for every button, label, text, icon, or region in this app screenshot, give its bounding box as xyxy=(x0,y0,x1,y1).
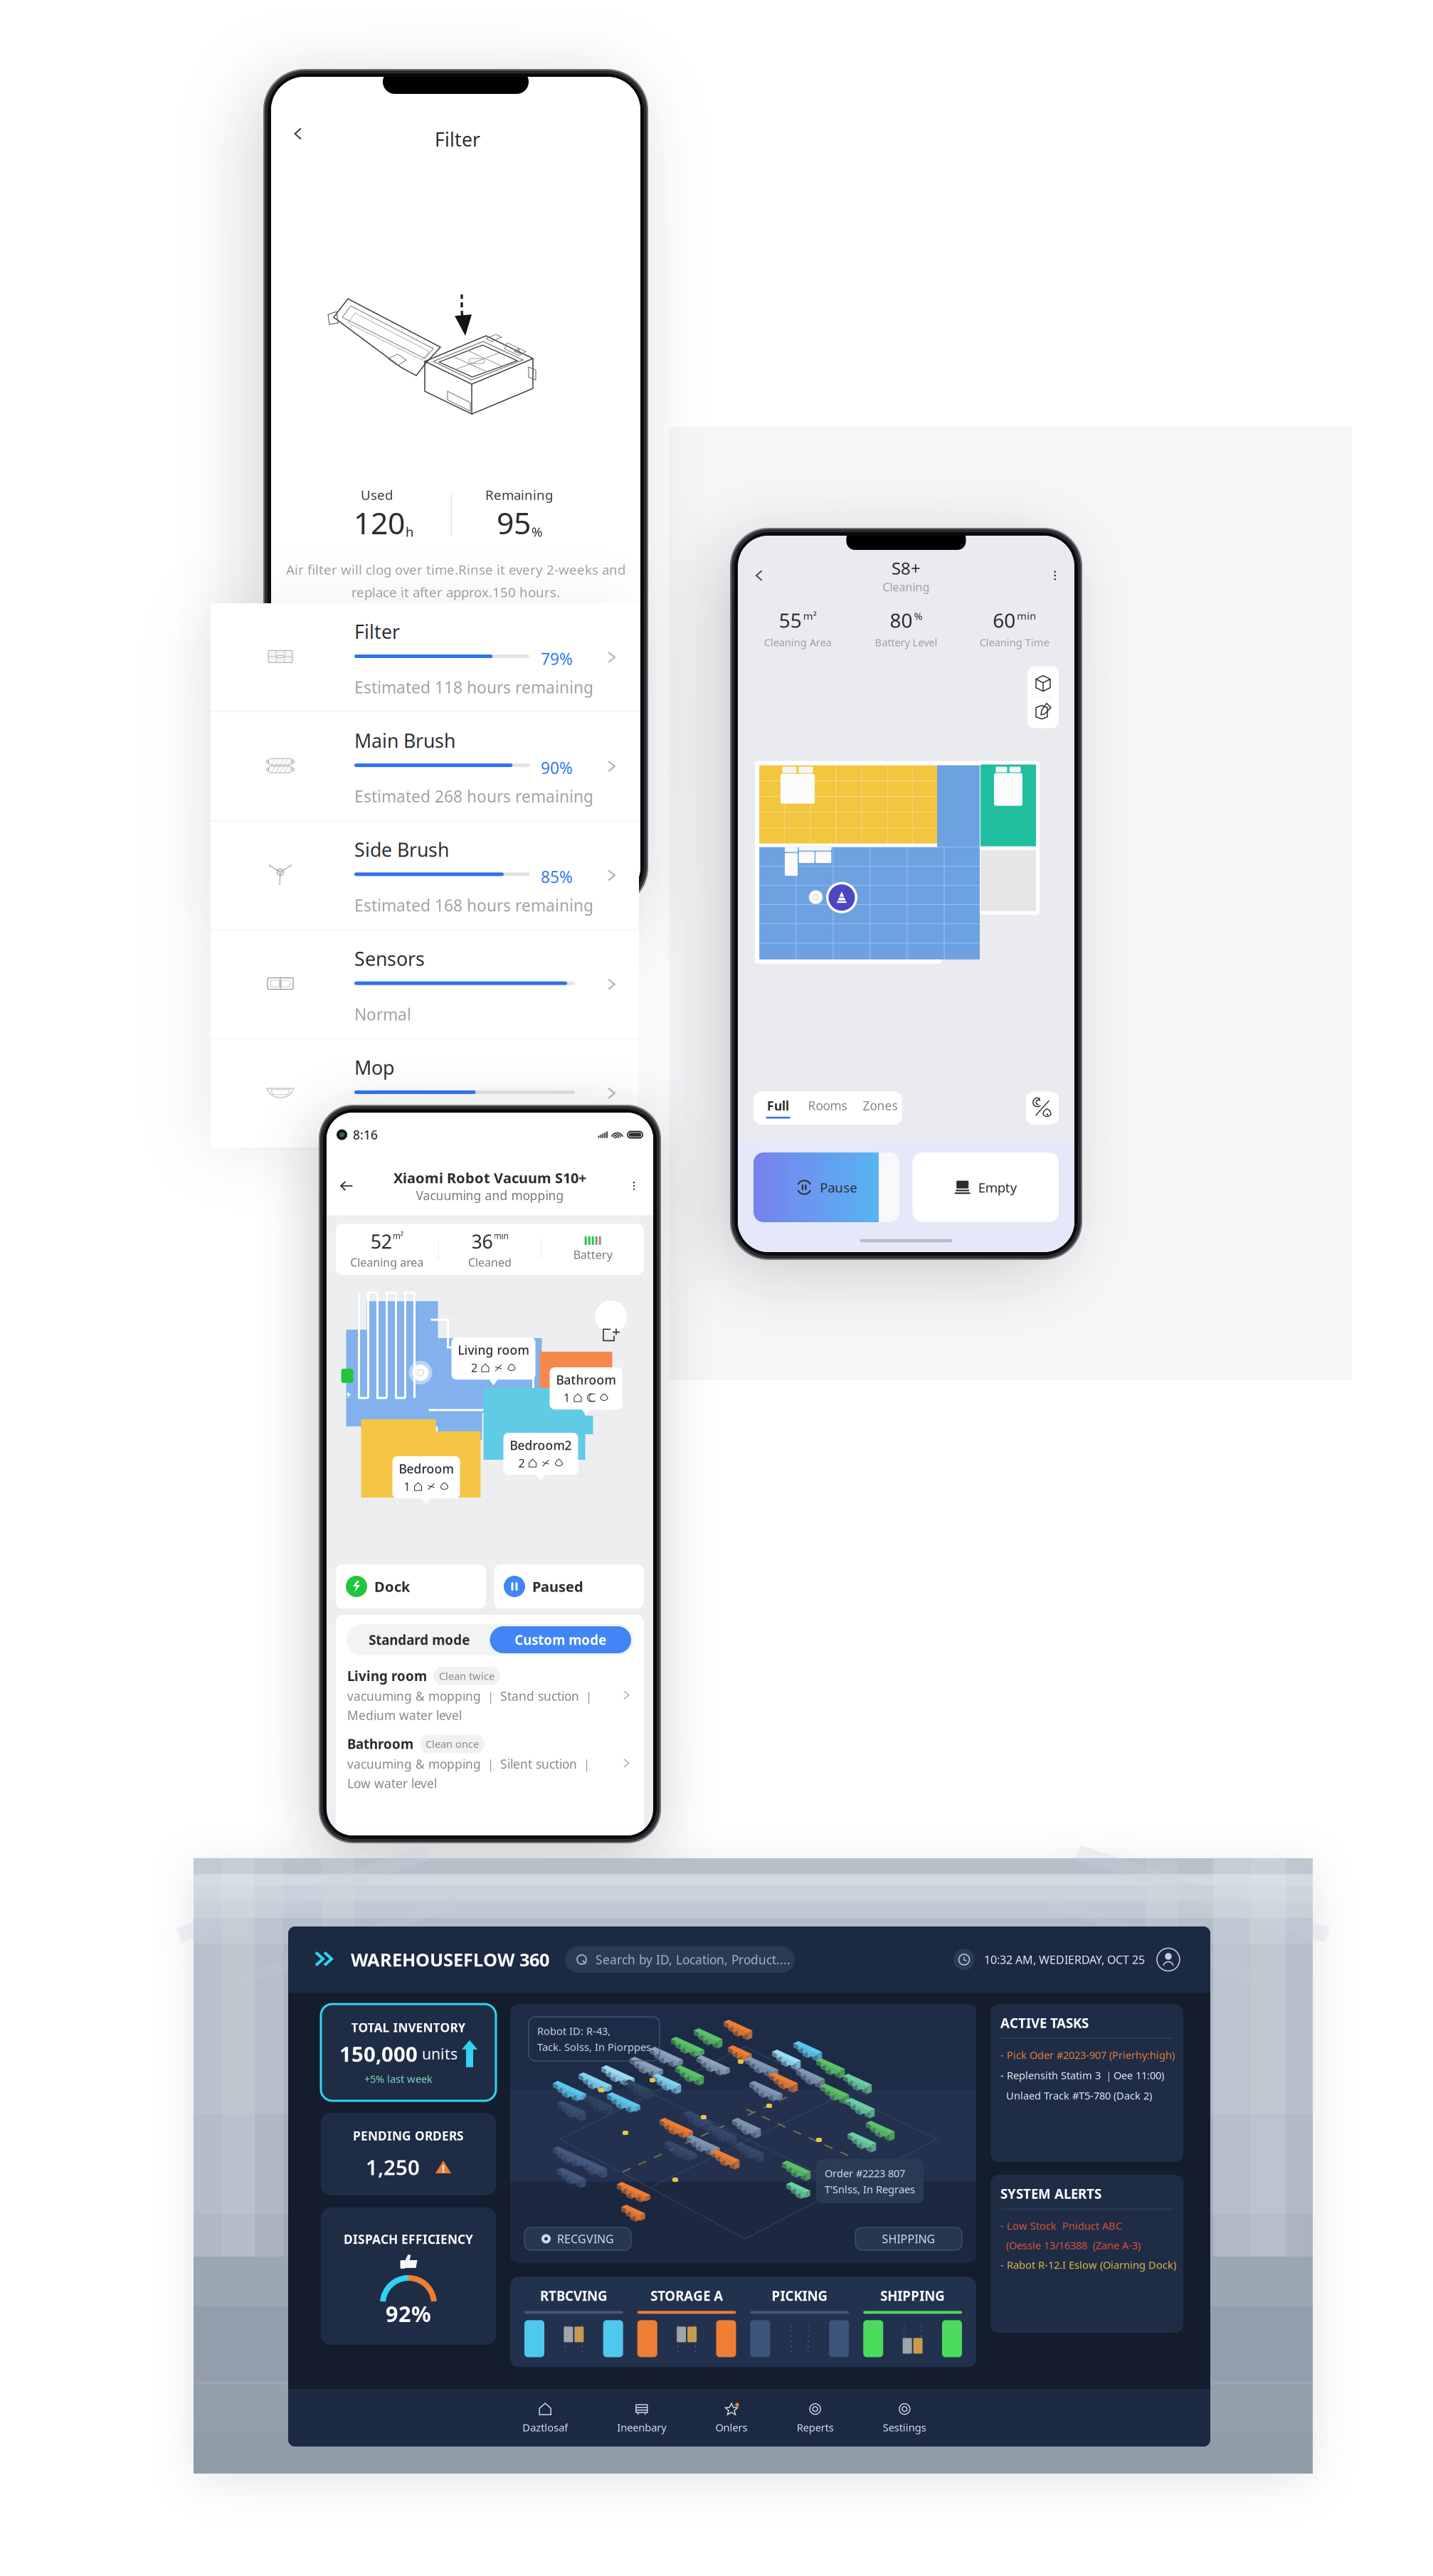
staticText: 90% xyxy=(541,757,573,778)
button[interactable]: Standard mode xyxy=(349,1626,490,1653)
staticText: Normal xyxy=(354,1004,411,1025)
button[interactable]: 3D view xyxy=(1027,670,1059,697)
button[interactable]: Back xyxy=(332,1172,361,1200)
button[interactable]: Full xyxy=(750,1097,800,1119)
staticText: Bedroom2 xyxy=(510,1437,572,1453)
button[interactable]: Filter xyxy=(211,603,639,711)
staticText: 60 xyxy=(993,607,1016,633)
staticText: min xyxy=(493,1230,508,1241)
staticText: 2 xyxy=(518,1456,525,1471)
staticText: Clean twice xyxy=(439,1669,495,1683)
button[interactable]: Account xyxy=(1157,1948,1180,1971)
button[interactable]: Empty xyxy=(913,1152,1059,1222)
staticText: Pause xyxy=(820,1179,858,1196)
staticText: 1 xyxy=(564,1390,570,1405)
staticText: Zones xyxy=(863,1097,898,1114)
staticText: 52 xyxy=(371,1229,392,1254)
staticText: Reperts xyxy=(797,2420,834,2434)
button[interactable]: Custom mode xyxy=(490,1626,631,1653)
staticText: Bathroom xyxy=(556,1372,616,1388)
staticText: WAREHOUSEFLOW 360 xyxy=(351,1948,549,1972)
button[interactable]: Edit map xyxy=(1027,698,1059,725)
button[interactable]: Side Brush xyxy=(211,821,639,929)
button[interactable]: Main Brush xyxy=(211,712,639,820)
staticText: 120 xyxy=(354,502,405,543)
staticText: 8:16 xyxy=(353,1127,378,1143)
staticText: units xyxy=(422,2044,458,2064)
staticText: h xyxy=(406,523,414,540)
staticText: SYSTEM ALERTS xyxy=(1000,2185,1101,2202)
staticText: Mop xyxy=(354,1055,394,1080)
staticText: 95 xyxy=(497,502,531,543)
staticText: - Low Stock Pniduct ABC xyxy=(1000,2219,1122,2233)
staticText: Sestiings xyxy=(883,2420,926,2434)
staticText: Vacuuming and mopping xyxy=(416,1187,564,1204)
staticText: Estimated 268 hours remaining xyxy=(354,786,593,807)
staticText: Xiaomi Robot Vacuum S10+ xyxy=(393,1168,586,1187)
button[interactable]: Mop xyxy=(211,1039,639,1147)
button[interactable]: Back xyxy=(738,568,766,583)
staticText: Used xyxy=(361,486,393,504)
staticText: ACTIVE TASKS xyxy=(1000,2014,1089,2032)
button[interactable]: Dock xyxy=(336,1564,486,1608)
button[interactable]: More options xyxy=(623,1175,645,1197)
staticText: % xyxy=(914,609,922,623)
staticText: m² xyxy=(803,609,817,623)
staticText: 79% xyxy=(541,648,573,670)
button[interactable]: More options xyxy=(1054,571,1074,580)
staticText: Cleaning Area xyxy=(764,635,832,649)
button[interactable]: Back xyxy=(282,118,314,149)
staticText: Filter xyxy=(354,619,400,644)
staticText: 85% xyxy=(541,866,573,887)
staticText: Replace needed xyxy=(354,1112,476,1134)
staticText: Bathroom xyxy=(347,1735,413,1753)
staticText: Tack. Solss, In Piorppes xyxy=(537,2040,651,2054)
staticText: Rooms xyxy=(808,1097,847,1114)
staticText: 150,000 xyxy=(339,2040,418,2068)
staticText: Side Brush xyxy=(354,837,449,862)
staticText: Remaining xyxy=(485,486,553,504)
staticText: Sensors xyxy=(354,946,425,971)
staticText: 1 xyxy=(404,1479,410,1494)
button[interactable]: Onlers xyxy=(715,2401,747,2434)
button[interactable]: Daztlosaf xyxy=(522,2401,568,2434)
staticText: PENDING ORDERS xyxy=(353,2127,464,2144)
button[interactable]: Sestiings xyxy=(883,2401,926,2434)
staticText: Unlaed Track #T5-780 (Dack 2) xyxy=(1000,2089,1152,2102)
button[interactable]: Pause xyxy=(753,1152,900,1222)
staticText: Battery xyxy=(573,1247,612,1262)
button[interactable]: Ineenbary xyxy=(617,2401,666,2434)
staticText: Daztlosaf xyxy=(522,2420,568,2434)
staticText: min xyxy=(1017,609,1036,623)
staticText: 36 xyxy=(471,1229,493,1254)
button[interactable]: Sensors xyxy=(211,930,639,1038)
staticText: SHIPPING xyxy=(882,2231,935,2246)
button[interactable]: Add map xyxy=(595,1300,627,1332)
staticText: SHIPPING xyxy=(880,2287,945,2305)
button[interactable]: Rooms xyxy=(800,1097,855,1119)
staticText: vacuuming & mopping ｜ Silent suction ｜ xyxy=(347,1756,593,1772)
button[interactable]: Bathroom xyxy=(336,1723,644,1791)
staticText: % xyxy=(532,523,543,540)
button[interactable]: Zones xyxy=(855,1097,905,1119)
staticText: Custom mode xyxy=(515,1631,606,1649)
staticText: Cleaning xyxy=(883,579,930,594)
staticText: DISPACH EFFICIENCY xyxy=(344,2231,473,2247)
staticText: - Replensith Statim 3 ｜Oee 11:00) xyxy=(1000,2068,1164,2082)
staticText: Estimated 118 hours remaining xyxy=(354,677,593,698)
staticText: Clean once xyxy=(425,1737,479,1751)
button[interactable]: Suction and water level xyxy=(1026,1092,1059,1124)
staticText: 92% xyxy=(386,2299,431,2328)
staticText: - Rabot R-12.I Eslow (Oiarning Dock) xyxy=(1000,2258,1176,2272)
staticText: 10:32 AM, WEDIERDAY, OCT 25 xyxy=(984,1952,1145,1967)
staticText: +5% last week xyxy=(364,2072,433,2086)
button[interactable]: Living room xyxy=(336,1655,644,1723)
staticText: Cleaned xyxy=(468,1255,512,1270)
staticText: Main Brush xyxy=(354,728,455,753)
staticText: TOTAL INVENTORY xyxy=(351,2019,466,2036)
button[interactable]: Reperts xyxy=(797,2401,834,2434)
staticText: Bedroom xyxy=(399,1461,454,1477)
staticText: vacuuming & mopping ｜ Stand suction ｜ xyxy=(347,1688,595,1704)
staticText: 55 xyxy=(779,607,802,633)
button[interactable]: Paused xyxy=(494,1564,644,1608)
